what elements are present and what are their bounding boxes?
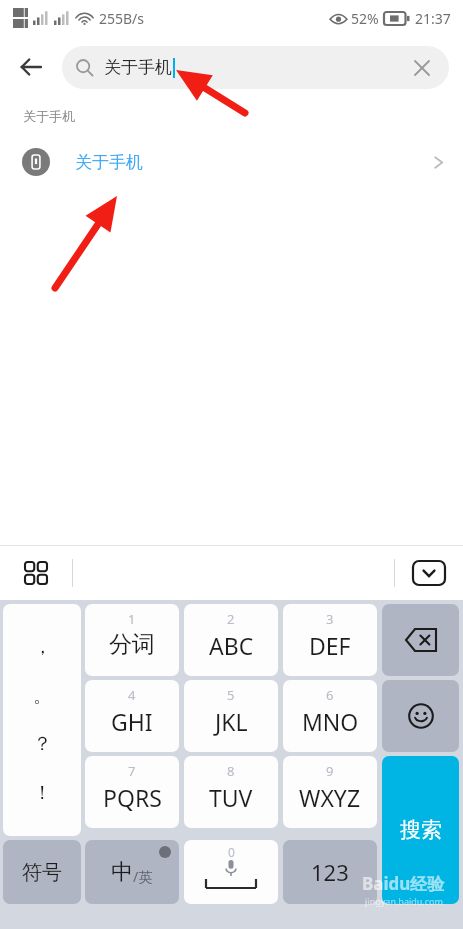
button[interactable]: 关于手机 [0,134,463,190]
button[interactable]: 9 [283,756,377,828]
staticText: /英 [133,867,153,886]
button[interactable]: 符号 [3,840,81,904]
staticText: 0 [228,844,235,860]
button[interactable]: Clear [409,55,435,81]
staticText: 关于手机 [75,152,143,173]
staticText: MNO [302,706,359,737]
staticText: ？ [33,732,52,756]
staticText: 分词 [109,630,155,659]
staticText: 关于手机 [104,57,172,78]
button[interactable]: 7 [85,756,179,828]
button[interactable]: Backspace [382,604,459,676]
staticText: 21:37 [415,9,451,28]
staticText: 中 [111,858,133,886]
staticText: WXYZ [299,782,361,813]
staticText: JKL [215,706,248,737]
staticText: Baidu经验 [362,872,445,895]
staticText: 搜索 [400,817,442,843]
button[interactable]: Voice input / space [184,840,278,904]
staticText: 符号 [22,860,62,885]
staticText: 1 [128,610,136,628]
staticText: 4 [128,686,136,704]
staticText: 3 [326,610,334,628]
button[interactable]: ， [3,604,81,836]
staticText: 6 [326,686,334,704]
staticText: PQRS [103,782,162,813]
button[interactable]: Emoji [382,680,459,752]
button[interactable]: Keyboard menu [0,546,72,600]
staticText: 关于手机 [23,108,75,124]
button[interactable]: 5 [184,680,278,752]
button[interactable]: Back [0,36,62,98]
button[interactable]: 关于手机 [62,46,449,89]
staticText: 8 [227,762,235,780]
button[interactable]: 2 [184,604,278,676]
staticText: ABC [209,630,254,661]
staticText: 7 [128,762,136,780]
button[interactable]: 中 [85,840,179,904]
staticText: 52% [351,9,379,28]
staticText: 9 [326,762,334,780]
button[interactable]: Hide keyboard [395,546,463,600]
staticText: 255B/s [99,9,145,28]
button[interactable]: 6 [283,680,377,752]
button[interactable]: 4 [85,680,179,752]
button[interactable]: 3 [283,604,377,676]
button[interactable]: 搜索 [382,756,459,904]
staticText: ， [33,635,52,659]
staticText: jingyan.baidu.com [365,895,443,907]
staticText: 。 [33,684,52,708]
staticText: TUV [209,782,253,813]
staticText: 5 [227,686,235,704]
staticText: DEF [309,630,351,661]
button[interactable]: 1 [85,604,179,676]
staticText: ！ [33,781,52,805]
staticText: 2 [227,610,235,628]
staticText: GHI [111,706,153,737]
button[interactable]: 123 [283,840,377,904]
staticText: 123 [311,857,349,887]
button[interactable]: 8 [184,756,278,828]
